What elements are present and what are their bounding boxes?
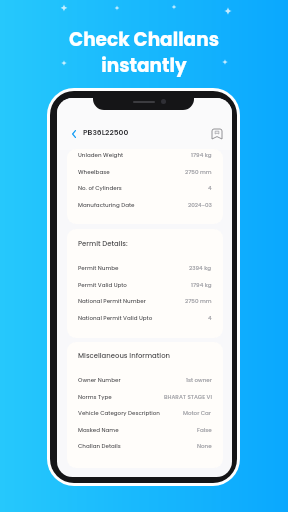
staticText: 2750 mm: [185, 168, 212, 176]
button[interactable]: Owner Number: [78, 376, 212, 384]
staticText: 1794 kg: [191, 281, 212, 289]
staticText: 1st owner: [186, 376, 212, 384]
staticText: Wheelbase: [78, 168, 110, 176]
staticText: No. of Cylinders: [78, 184, 122, 192]
staticText: Owner Number: [78, 376, 121, 384]
staticText: Permit Numbe: [78, 264, 119, 272]
staticText: Norms Type: [78, 393, 112, 401]
staticText: 4: [208, 184, 212, 192]
staticText: 4: [208, 314, 212, 322]
button[interactable]: Vehicle Category Description: [78, 409, 212, 417]
button[interactable]: Permit Numbe: [78, 264, 212, 272]
staticText: 1794 kg: [191, 151, 212, 159]
staticText: Challan Details: [78, 442, 121, 450]
staticText: Motor Car: [183, 409, 212, 417]
staticText: PB36L22500: [83, 127, 129, 137]
button[interactable]: Bookmark: [207, 124, 226, 143]
button[interactable]: Permit Valid Upto: [78, 281, 212, 289]
button[interactable]: No. of Cylinders: [78, 184, 212, 192]
button[interactable]: Challan Details: [78, 442, 212, 450]
staticText: Check Challans instantly: [69, 27, 219, 79]
staticText: None: [197, 442, 212, 450]
staticText: False: [197, 426, 212, 434]
button[interactable]: National Permit Valid Upto: [78, 314, 212, 322]
staticText: Permit Valid Upto: [78, 281, 127, 289]
staticText: Miscellaneous Information: [78, 351, 171, 361]
button[interactable]: Manufacturing Date: [78, 201, 212, 209]
button[interactable]: National Permit Number: [78, 297, 212, 305]
staticText: Unladen Weight: [78, 151, 124, 159]
staticText: Permit Details:: [78, 239, 128, 249]
staticText: Vehicle Category Description: [78, 409, 160, 417]
staticText: National Permit Valid Upto: [78, 314, 153, 322]
button[interactable]: Norms Type: [78, 393, 212, 401]
staticText: 2394 kg: [189, 264, 212, 272]
button[interactable]: Wheelbase: [78, 168, 212, 176]
staticText: Masked Name: [78, 426, 119, 434]
staticText: Manufacturing Date: [78, 201, 135, 209]
button[interactable]: Masked Name: [78, 426, 212, 434]
staticText: National Permit Number: [78, 297, 146, 305]
staticText: BHARAT STAGE VI: [164, 393, 212, 401]
staticText: 2750 mm: [185, 297, 212, 305]
staticText: 2024-03: [188, 201, 212, 209]
button[interactable]: Back: [65, 125, 82, 142]
button[interactable]: Unladen Weight: [78, 151, 212, 159]
